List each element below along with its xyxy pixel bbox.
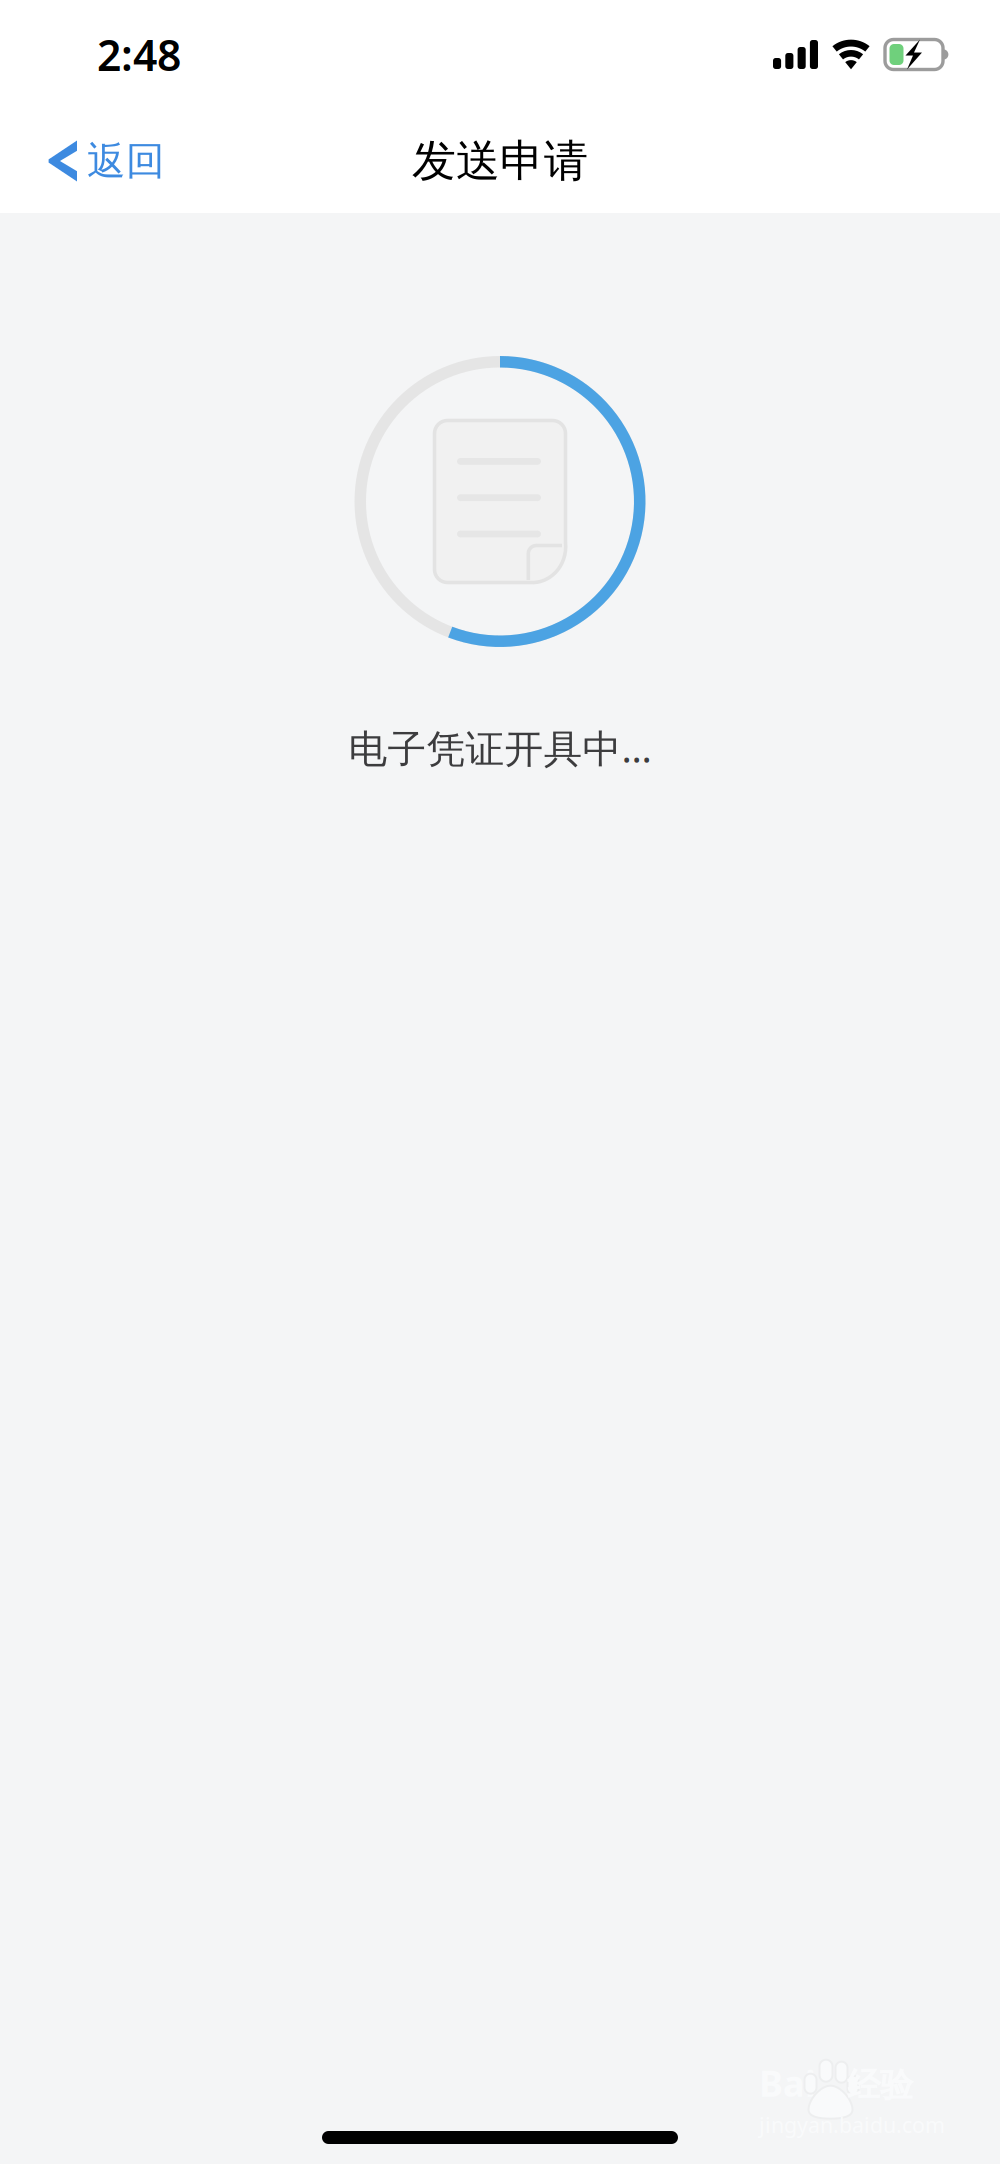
button[interactable]: 返回 xyxy=(0,109,185,213)
staticText: 电子凭证开具中... xyxy=(348,722,651,773)
staticText: 发送申请 xyxy=(412,134,588,188)
staticText: 2:48 xyxy=(97,26,181,83)
staticText: 返回 xyxy=(87,137,165,185)
